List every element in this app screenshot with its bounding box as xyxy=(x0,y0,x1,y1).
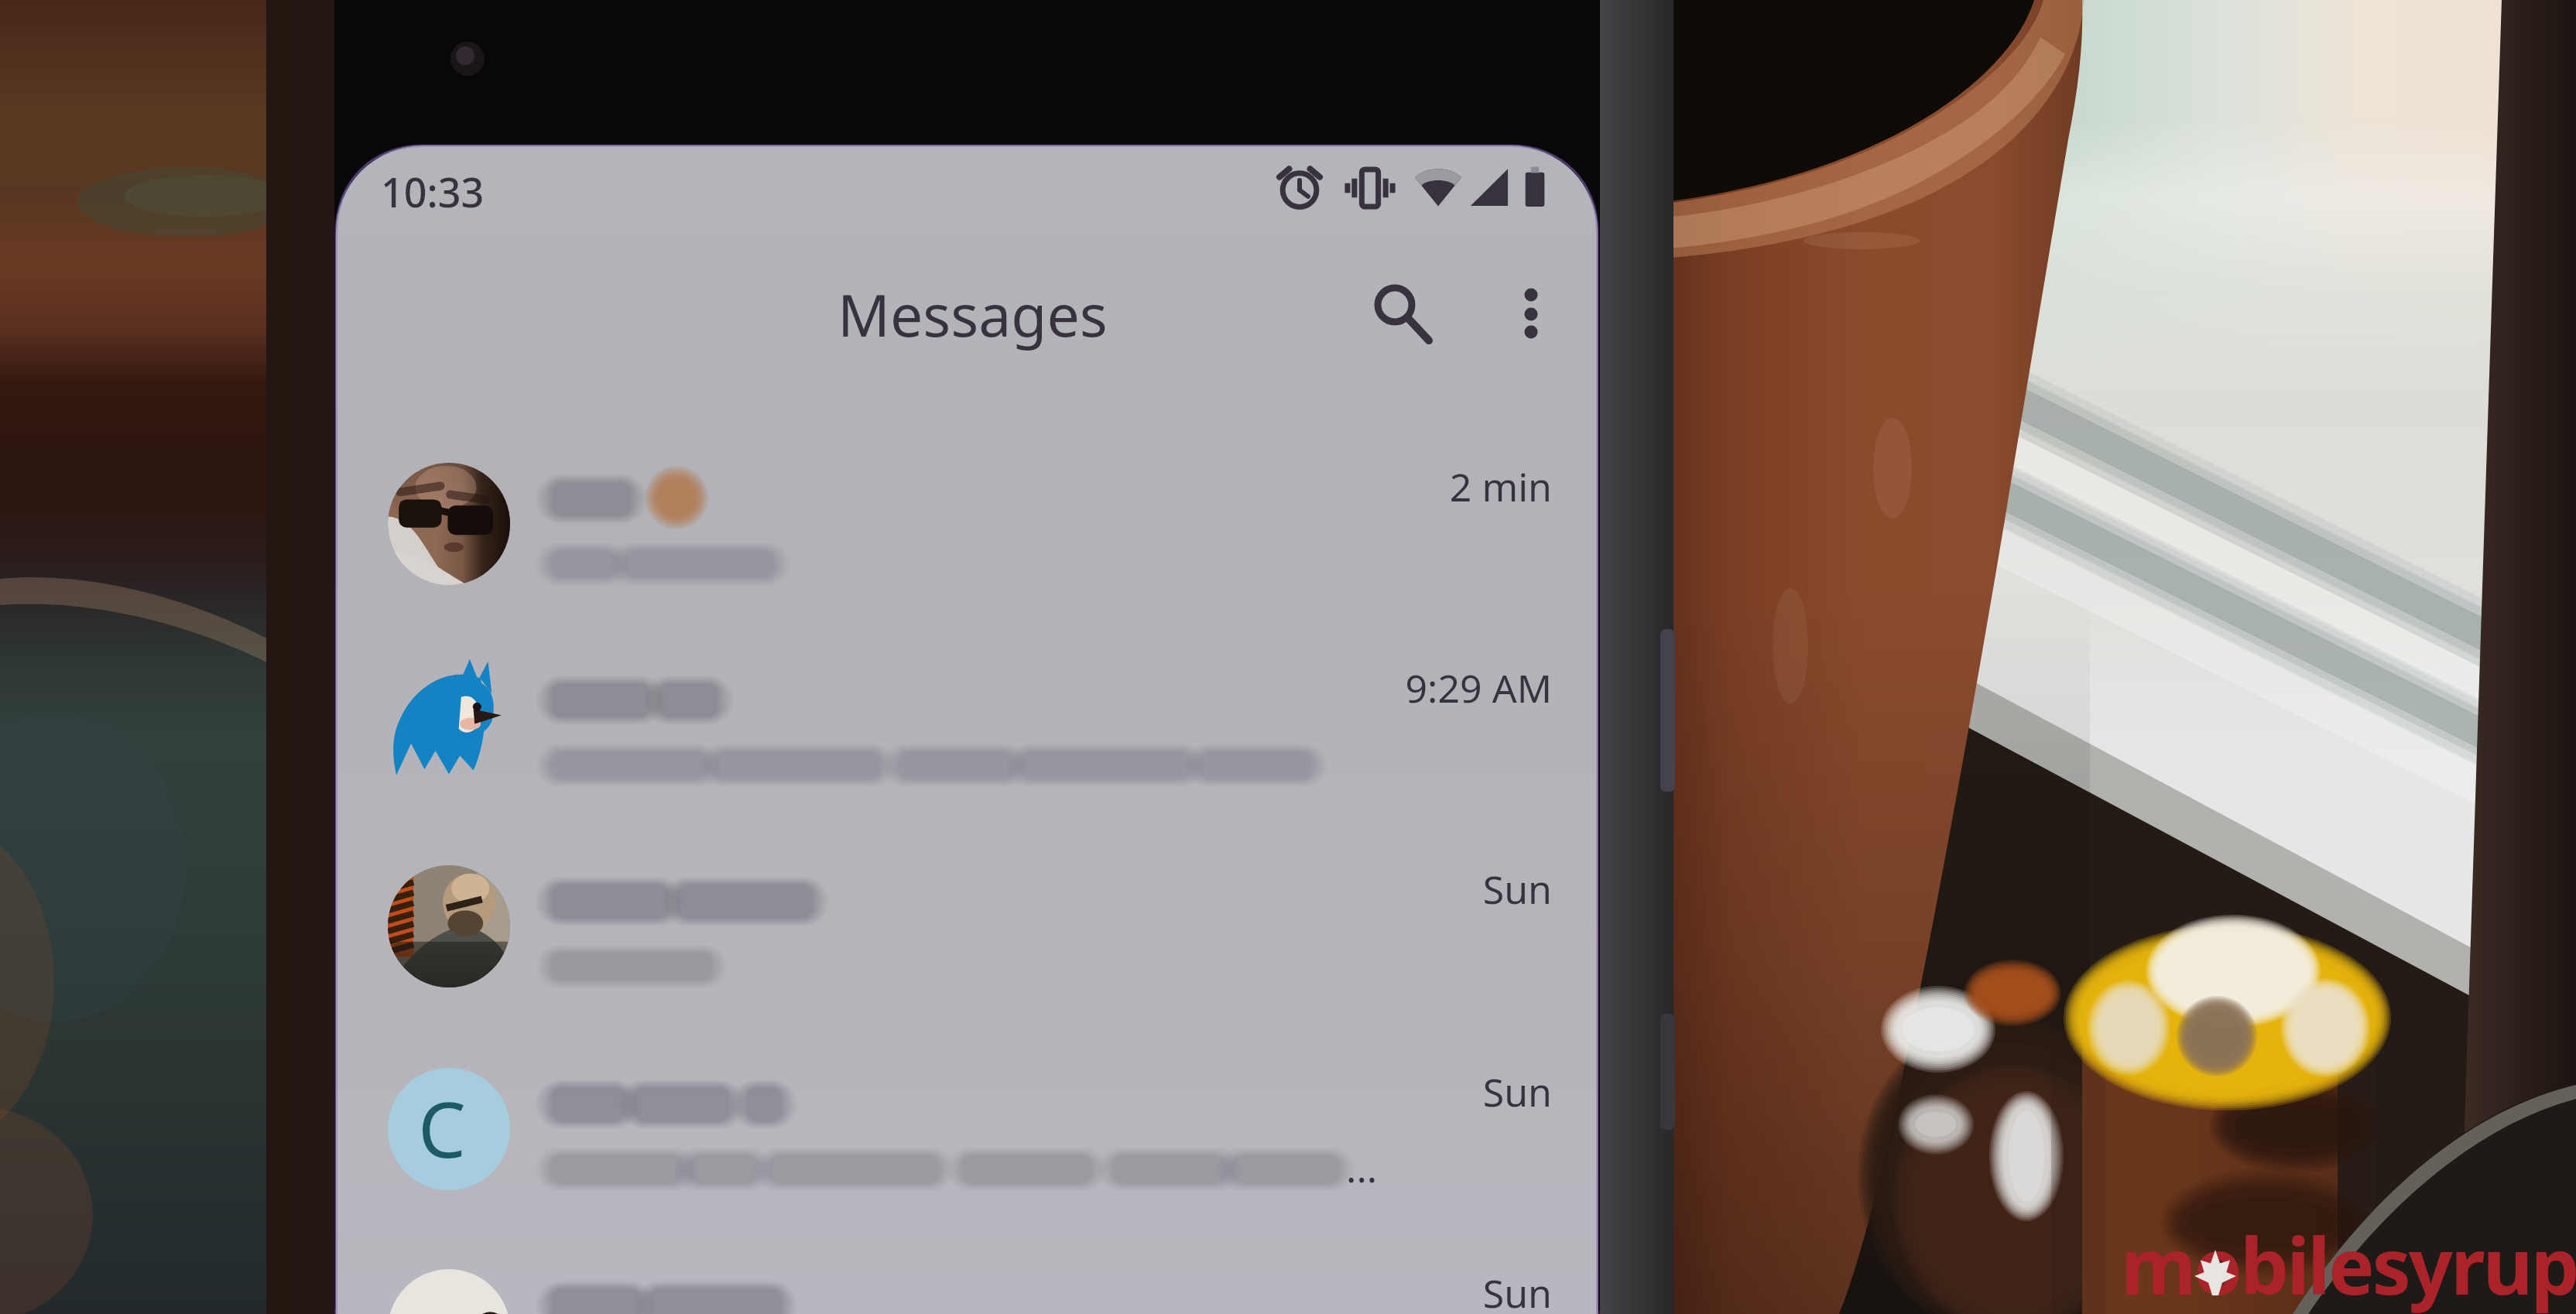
button[interactable]: Sun xyxy=(336,1230,1598,1314)
staticText: Messages xyxy=(838,275,1108,354)
staticText: Sun xyxy=(336,1066,1552,1118)
button[interactable]: Sun xyxy=(336,826,1598,1027)
button[interactable]: 9:29 AM xyxy=(336,624,1598,826)
staticText: ... xyxy=(1346,1141,1378,1194)
button[interactable]: C xyxy=(336,1028,1598,1230)
button[interactable]: More options xyxy=(1486,262,1579,354)
staticText: Sun xyxy=(336,1267,1552,1314)
staticText: Sun xyxy=(336,863,1552,915)
staticText: 2 min xyxy=(336,460,1552,513)
button[interactable]: Search xyxy=(1358,268,1454,364)
staticText: mobilesyrup xyxy=(2121,1212,2576,1314)
button[interactable]: 2 min xyxy=(336,423,1598,624)
staticText: C xyxy=(418,1076,466,1179)
staticText: 9:29 AM xyxy=(336,662,1552,714)
staticText: 10:33 xyxy=(381,164,485,219)
